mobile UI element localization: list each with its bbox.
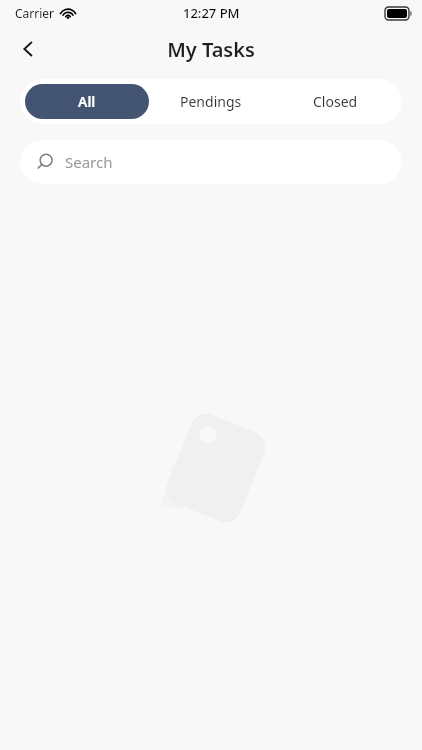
staticText: Search <box>65 152 113 172</box>
staticText: My Tasks <box>167 36 255 63</box>
button[interactable]: Pendings <box>149 84 273 119</box>
staticText: Carrier <box>15 5 55 21</box>
staticText: Pendings <box>180 92 242 111</box>
staticText: 12:27 PM <box>183 4 240 22</box>
staticText: Closed <box>313 92 358 111</box>
staticText: All <box>78 92 96 111</box>
button[interactable]: All <box>25 84 149 119</box>
button[interactable]: Back <box>8 29 48 69</box>
button[interactable]: Search <box>20 140 402 184</box>
button[interactable]: Closed <box>273 84 397 119</box>
